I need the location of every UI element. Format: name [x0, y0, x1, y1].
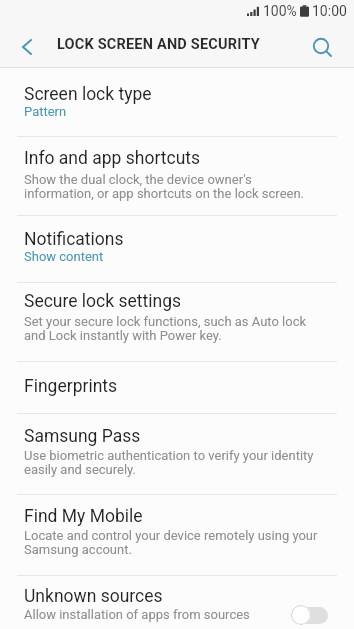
- staticText: 100%: [263, 3, 297, 19]
- staticText: Secure lock settings: [24, 291, 182, 312]
- staticText: Screen lock type: [24, 84, 152, 105]
- staticText: Info and app shortcuts: [24, 148, 201, 169]
- button[interactable]: Info and app shortcuts: [0, 137, 354, 215]
- button[interactable]: Samsung Pass: [0, 414, 354, 494]
- staticText: Pattern: [24, 104, 67, 119]
- button[interactable]: [306, 22, 354, 67]
- staticText: 10:00: [312, 3, 347, 19]
- staticText: Use biometric authentication to verify y…: [24, 448, 314, 478]
- staticText: Locate and control your device remotely …: [24, 528, 318, 558]
- button[interactable]: Unknown sources: [0, 576, 354, 629]
- staticText: Set your secure lock functions, such as …: [24, 314, 307, 344]
- staticText: Samsung Pass: [24, 426, 141, 447]
- button[interactable]: Screen lock type: [0, 68, 354, 136]
- staticText: LOCK SCREEN AND SECURITY: [57, 36, 260, 53]
- staticText: Show content: [24, 249, 104, 264]
- button[interactable]: Find My Mobile: [0, 495, 354, 575]
- staticText: Unknown sources: [24, 586, 163, 607]
- button[interactable]: [0, 22, 48, 67]
- staticText: Show the dual clock, the device owner's …: [24, 172, 305, 202]
- staticText: Notifications: [24, 229, 124, 250]
- staticText: Find My Mobile: [24, 506, 143, 527]
- staticText: Allow installation of apps from sources: [24, 607, 250, 622]
- button[interactable]: Notifications: [0, 216, 354, 282]
- staticText: Fingerprints: [24, 376, 118, 397]
- button[interactable]: Secure lock settings: [0, 283, 354, 361]
- button[interactable]: Fingerprints: [0, 362, 354, 413]
